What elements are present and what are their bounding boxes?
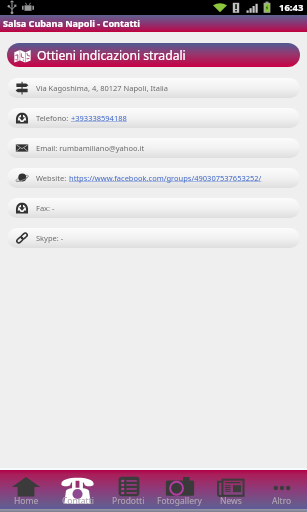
button[interactable]: Altro [256,470,307,509]
button[interactable]: Fax: - [7,198,300,218]
staticText: Ottieni indicazioni stradali [37,47,186,64]
staticText: News [220,495,242,507]
button[interactable]: Telefono: [7,108,300,128]
staticText: Home [14,495,39,507]
staticText: +393338594188 [71,113,127,123]
staticText: Email: rumbamiliano@yahoo.it [36,143,145,153]
staticText: Via Kagoshima, 4, 80127 Napoli, Italia [36,83,169,93]
staticText: Fax: - [36,203,55,213]
staticText: Altro [272,495,292,507]
staticText: Contatti [62,495,94,507]
button[interactable]: Prodotti [103,470,154,509]
button[interactable]: News [205,470,256,509]
button[interactable]: Website: [7,168,300,188]
button[interactable]: Email: rumbamiliano@yahoo.it [7,138,300,158]
staticText: Website: [36,173,69,183]
button[interactable]: Home [0,470,52,509]
staticText: 16:43 [279,1,304,14]
button[interactable]: Skype: - [7,228,300,248]
button[interactable]: Ottieni indicazioni stradali [7,43,300,67]
staticText: https://www.facebook.com/groups/49030753… [69,173,262,183]
staticText: Prodotti [112,495,145,507]
button[interactable]: Fotogallery [154,470,205,509]
staticText: Telefono: [36,113,71,123]
button[interactable]: Via Kagoshima, 4, 80127 Napoli, Italia [7,78,300,98]
staticText: Fotogallery [157,495,202,507]
staticText: Skype: - [36,233,64,243]
staticText: Salsa Cubana Napoli - Contatti [3,17,140,29]
button[interactable]: Contatti [52,470,103,509]
